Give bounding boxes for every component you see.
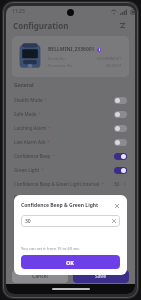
button[interactable]: Latching Alarm — [6, 121, 135, 135]
staticText: You can set it from 15 to 60 sec. — [21, 246, 81, 251]
staticText: * — [47, 125, 51, 131]
staticText: BELLMINI_2336001 — [48, 46, 95, 53]
button[interactable]: More options — [116, 19, 128, 31]
button[interactable]: Low Alarm Ack — [6, 135, 135, 149]
staticText: Serial No — [48, 56, 65, 61]
staticText: 30 — [114, 181, 120, 187]
staticText: i — [99, 48, 100, 52]
button[interactable]: Datalog Interval — [6, 190, 135, 203]
staticText: * — [43, 97, 47, 103]
button[interactable]: Stealth Mode — [6, 93, 135, 107]
button[interactable]: BELLMINI_2336001 — [12, 36, 129, 77]
staticText: Confidence Beep & Green Light Interval — [14, 181, 100, 187]
staticText: Green Light — [14, 167, 40, 173]
button[interactable]: Close — [113, 202, 120, 209]
staticText: * — [100, 181, 104, 187]
staticText: Configuration — [13, 20, 69, 31]
staticText: Cancel — [32, 273, 48, 280]
staticText: General — [14, 82, 34, 89]
staticText: Latching Alarm — [14, 125, 47, 131]
button[interactable]: Cancel — [12, 270, 68, 283]
staticText: Datalog Interval — [14, 194, 49, 200]
button[interactable]: Confidence Beep — [6, 149, 135, 163]
button[interactable]: Green Light — [6, 163, 135, 177]
staticText: Confidence Beep & Green Light Interval — [21, 202, 113, 209]
button[interactable]: Confidence Beep & Green Light Interval — [6, 177, 135, 190]
staticText: S2336RM001 — [97, 56, 122, 61]
staticText: * — [37, 111, 41, 117]
button[interactable]: Save — [73, 270, 129, 283]
button[interactable]: OK — [21, 255, 120, 269]
staticText: * — [51, 153, 55, 159]
button[interactable]: 30 — [21, 215, 120, 227]
staticText: Firmware Ver — [48, 63, 73, 68]
button[interactable]: Safe Mode — [6, 107, 135, 121]
staticText: 11:25 — [12, 8, 25, 15]
staticText: 00.00.01 — [106, 63, 122, 68]
staticText: * — [49, 194, 53, 200]
staticText: 30 — [25, 218, 31, 225]
staticText: Low Alarm Ack — [14, 139, 46, 145]
staticText: Save — [95, 273, 107, 280]
staticText: OK — [66, 259, 75, 266]
staticText: * — [40, 167, 44, 173]
staticText: * — [46, 139, 50, 145]
staticText: 30 — [114, 194, 120, 200]
staticText: Confidence Beep — [14, 153, 51, 159]
staticText: Stealth Mode — [14, 97, 43, 103]
staticText: Safe Mode — [14, 111, 37, 117]
